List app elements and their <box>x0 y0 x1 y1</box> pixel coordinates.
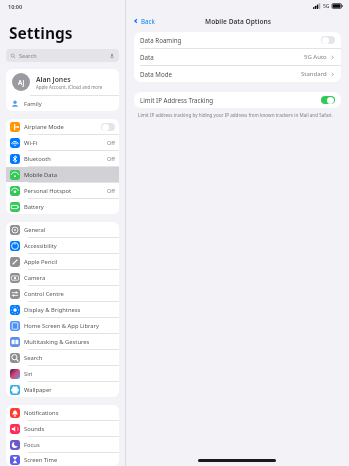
staticText: Focus <box>24 441 40 449</box>
button[interactable]: Home Screen & App Library <box>6 318 119 333</box>
staticText: Mobile Data Options <box>205 17 271 26</box>
button[interactable]: Data <box>134 49 341 65</box>
staticText: Search <box>24 354 43 362</box>
staticText: Mobile Data <box>24 171 57 179</box>
staticText: Data <box>140 53 154 61</box>
staticText: Battery <box>24 203 44 211</box>
button[interactable]: Apple Pencil <box>6 254 119 269</box>
button[interactable]: Wallpaper <box>6 382 119 397</box>
staticText: Wi-Fi <box>24 139 38 147</box>
staticText: Limit IP Address Tracking <box>140 96 214 104</box>
staticText: Display & Brightness <box>24 306 81 314</box>
staticText: Back <box>141 17 155 25</box>
button[interactable]: Bluetooth <box>6 151 119 166</box>
button[interactable]: Control Centre <box>6 286 119 301</box>
button[interactable]: Accessibility <box>6 238 119 253</box>
button[interactable]: Limit IP Address Tracking <box>134 92 341 108</box>
staticText: 5G <box>323 3 330 10</box>
button[interactable]: Battery <box>6 199 119 214</box>
staticText: Data Roaming <box>140 36 182 44</box>
button[interactable]: General <box>6 222 119 237</box>
staticText: Off <box>107 155 115 162</box>
staticText: Siri <box>24 370 33 378</box>
button[interactable]: Airplane Mode <box>6 119 119 134</box>
button[interactable]: Personal Hotspot <box>6 183 119 198</box>
staticText: Screen Time <box>24 456 58 464</box>
button[interactable]: Focus <box>6 437 119 452</box>
button[interactable]: Toggle <box>321 96 335 104</box>
staticText: Personal Hotspot <box>24 187 72 195</box>
staticText: Accessibility <box>24 242 57 250</box>
button[interactable]: Search <box>6 350 119 365</box>
button[interactable]: Mobile Data <box>6 167 119 182</box>
staticText: Limit IP address tracking by hiding your… <box>138 112 333 118</box>
button[interactable]: Notifications <box>6 405 119 420</box>
button[interactable]: Camera <box>6 270 119 285</box>
button[interactable]: Toggle <box>321 36 335 44</box>
staticText: Settings <box>9 22 73 43</box>
staticText: Wallpaper <box>24 386 52 394</box>
button[interactable]: Display & Brightness <box>6 302 119 317</box>
staticText: Apple Account, iCloud and more <box>36 84 103 90</box>
staticText: Bluetooth <box>24 155 51 163</box>
staticText: Sounds <box>24 425 45 433</box>
button[interactable]: Toggle <box>101 123 115 131</box>
button[interactable]: Sounds <box>6 421 119 436</box>
button[interactable]: Multitasking & Gestures <box>6 334 119 349</box>
staticText: 5G Auto <box>304 53 327 61</box>
staticText: Control Centre <box>24 290 64 298</box>
staticText: Off <box>107 139 115 146</box>
button[interactable]: Siri <box>6 366 119 381</box>
staticText: Standard <box>301 70 327 78</box>
staticText: Search <box>19 52 37 60</box>
staticText: AJ <box>18 78 25 87</box>
staticText: Airplane Mode <box>24 123 64 131</box>
button[interactable]: Family <box>6 96 119 111</box>
staticText: Off <box>107 187 115 194</box>
staticText: 10:00 <box>8 3 23 10</box>
button[interactable]: Data Mode <box>134 66 341 82</box>
staticText: Apple Pencil <box>24 258 58 266</box>
button[interactable]: Back <box>131 16 157 26</box>
staticText: Data Mode <box>140 70 172 78</box>
button[interactable]: AJ <box>6 69 119 95</box>
button[interactable]: Data Roaming <box>134 32 341 48</box>
button[interactable]: Wi-Fi <box>6 135 119 150</box>
staticText: Camera <box>24 274 46 282</box>
staticText: Notifications <box>24 409 59 417</box>
staticText: Multitasking & Gestures <box>24 338 90 346</box>
staticText: Alan Jones <box>36 75 71 84</box>
button[interactable]: Search <box>6 49 119 62</box>
staticText: General <box>24 226 46 234</box>
staticText: Home Screen & App Library <box>24 322 99 330</box>
staticText: Family <box>24 100 42 108</box>
button[interactable]: Screen Time <box>6 453 119 466</box>
